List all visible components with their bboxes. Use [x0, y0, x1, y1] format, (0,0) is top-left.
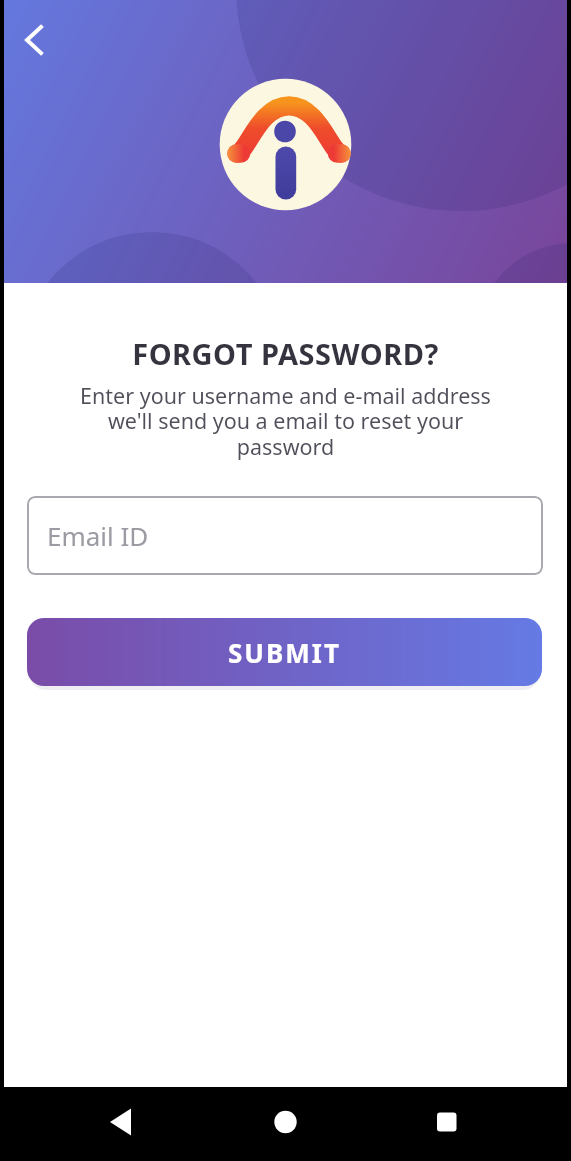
- button[interactable]: [12, 24, 46, 58]
- staticText: FORGOT PASSWORD?: [4, 334, 567, 373]
- button[interactable]: Email ID: [27, 496, 543, 575]
- button[interactable]: SUBMIT: [27, 618, 542, 686]
- button[interactable]: [0, 1087, 191, 1161]
- staticText: Email ID: [47, 518, 149, 553]
- staticText: Enter your username and e-mail address w…: [4, 381, 567, 461]
- staticText: SUBMIT: [228, 635, 341, 670]
- button[interactable]: [191, 1087, 381, 1161]
- button[interactable]: [381, 1087, 571, 1161]
